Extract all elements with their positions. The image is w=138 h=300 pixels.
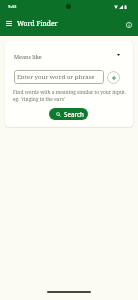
button[interactable]: Means like <box>11 49 127 63</box>
button[interactable]: Search <box>49 108 88 120</box>
button[interactable]: Info <box>121 17 136 32</box>
staticText: Means like <box>14 53 42 60</box>
staticText: Word Finder <box>17 19 58 28</box>
staticText: Find words with a meaning similar to you… <box>13 89 129 103</box>
button[interactable]: Open navigation menu <box>1 16 16 31</box>
staticText: 9:43 <box>8 4 17 10</box>
button[interactable]: Enter your word or phrase <box>14 70 104 84</box>
staticText: Enter your word or phrase <box>17 72 95 80</box>
staticText: Search <box>64 110 84 118</box>
button[interactable]: Add word <box>107 71 120 84</box>
